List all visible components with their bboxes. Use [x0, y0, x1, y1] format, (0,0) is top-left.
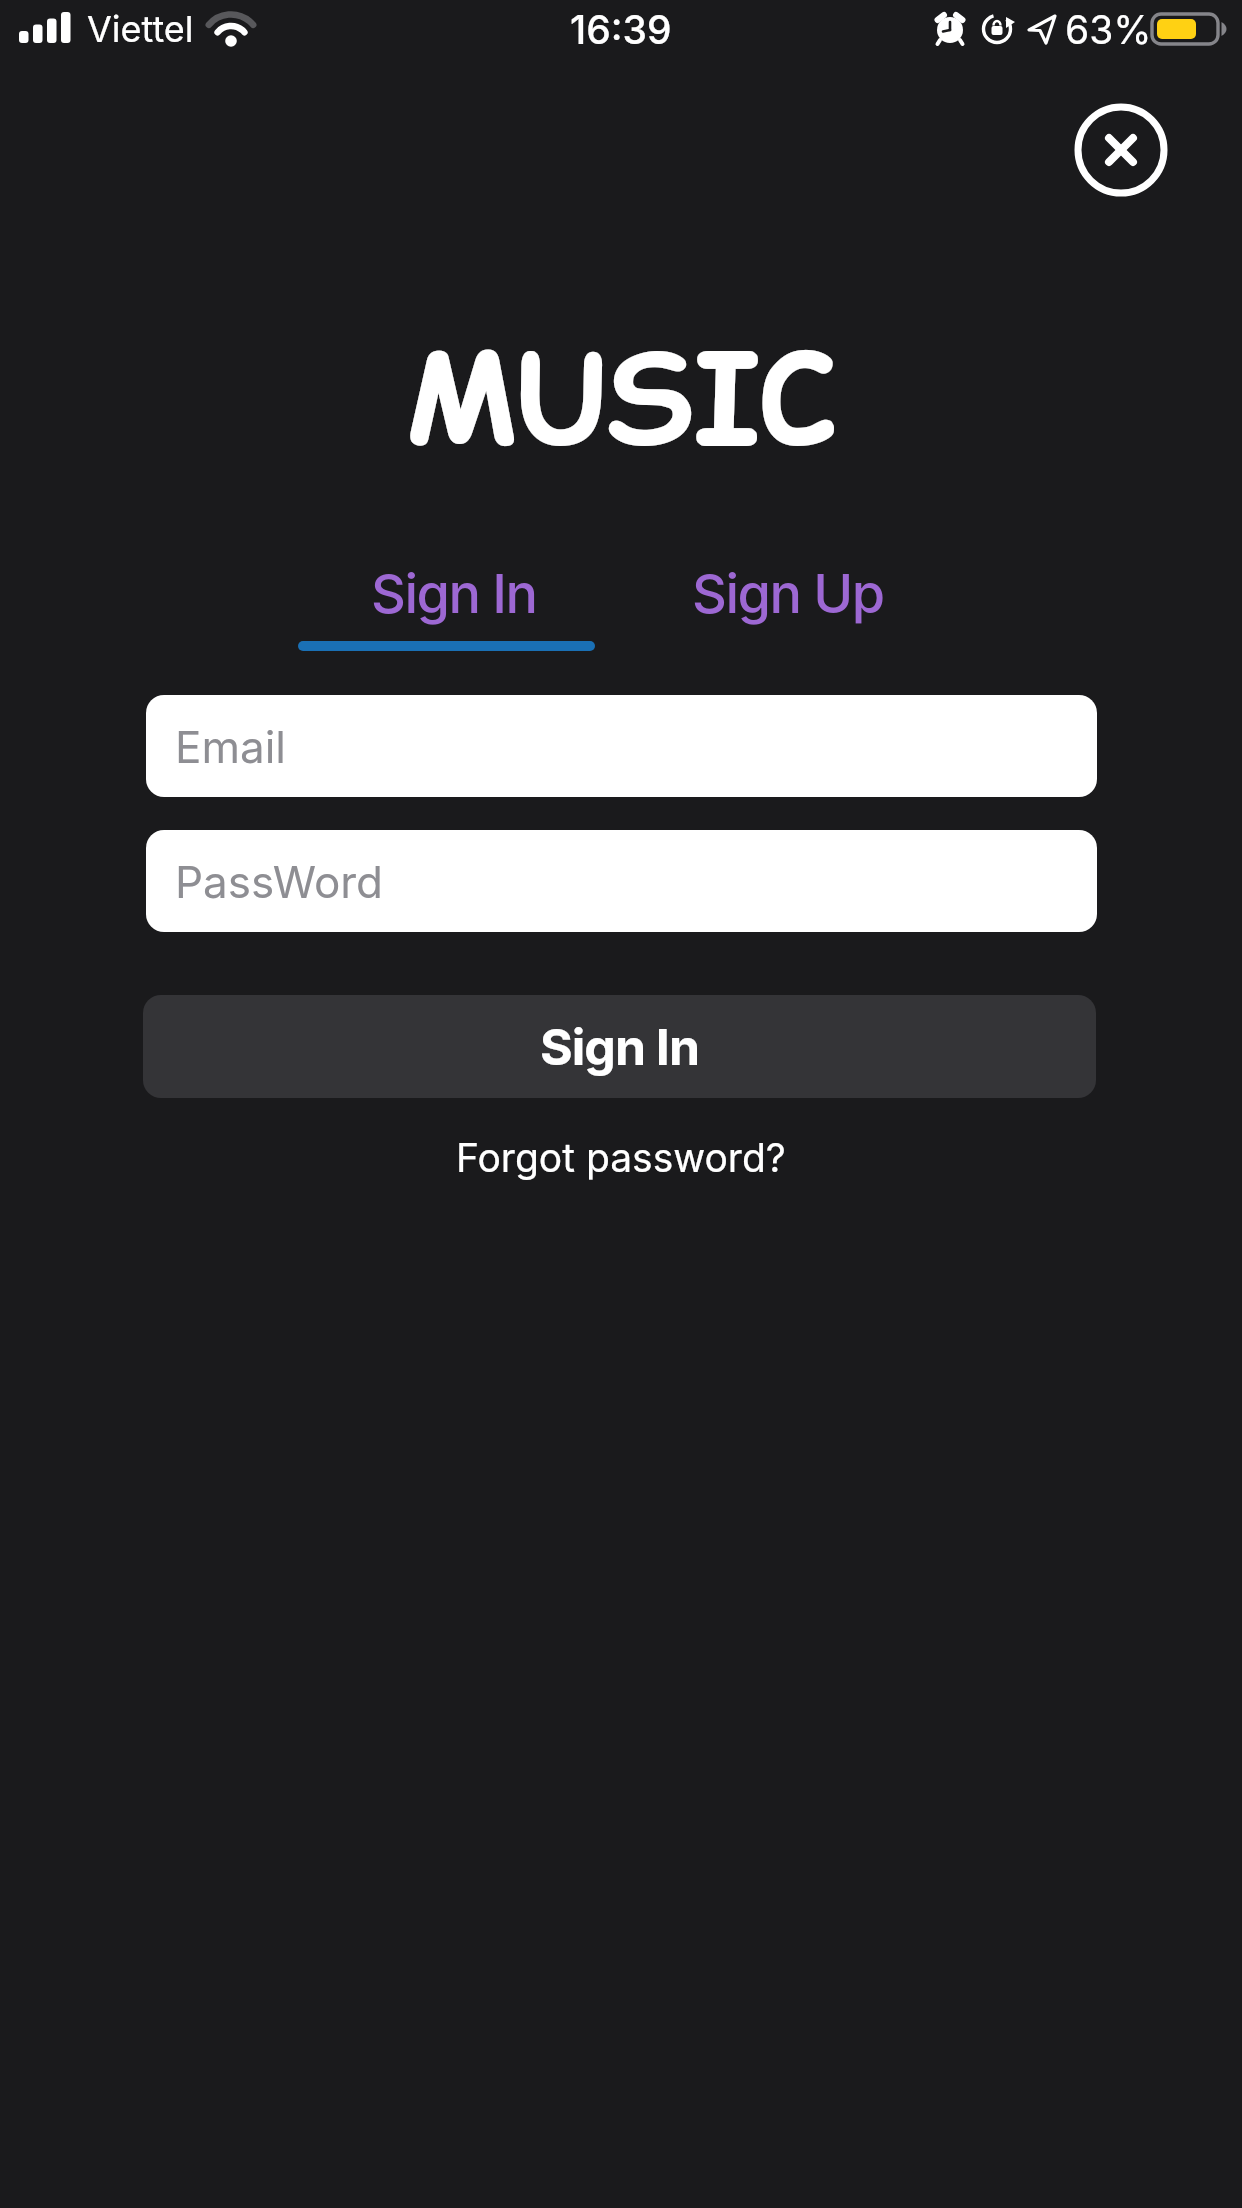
staticText: PassWord: [175, 855, 384, 908]
button[interactable]: Sign In: [143, 995, 1096, 1098]
button[interactable]: Sign In: [304, 548, 604, 638]
button[interactable]: PassWord: [146, 830, 1097, 932]
button[interactable]: [1071, 100, 1171, 200]
staticText: Forgot password?: [456, 1134, 786, 1181]
staticText: 63%: [1065, 6, 1152, 53]
staticText: MUSIC: [0, 311, 1242, 485]
staticText: Sign In: [371, 561, 537, 626]
button[interactable]: Email: [146, 695, 1097, 797]
staticText: Email: [175, 720, 287, 773]
staticText: Sign In: [540, 1017, 700, 1077]
staticText: 16:39: [570, 6, 672, 53]
staticText: Viettel: [87, 7, 194, 51]
button[interactable]: Forgot password?: [371, 1120, 871, 1194]
staticText: Sign Up: [692, 561, 884, 626]
button[interactable]: Sign Up: [638, 548, 938, 638]
